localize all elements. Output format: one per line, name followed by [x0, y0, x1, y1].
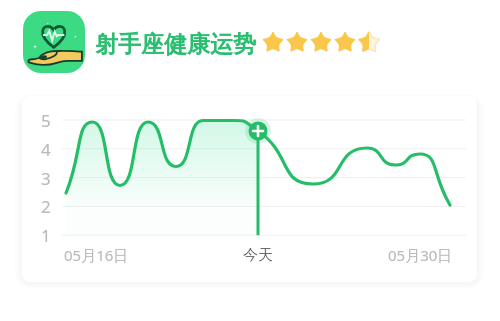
- staticText: 05月16日: [64, 245, 129, 265]
- staticText: 今天: [243, 246, 273, 265]
- staticText: 3: [41, 167, 51, 189]
- staticText: 射手座健康运势: [95, 30, 256, 59]
- staticText: 2: [41, 195, 51, 217]
- button[interactable]: [22, 96, 477, 282]
- button[interactable]: Health fortune app icon: [23, 11, 85, 73]
- staticText: 1: [41, 224, 51, 246]
- staticText: 4: [41, 138, 51, 160]
- staticText: 5: [41, 109, 51, 131]
- staticText: 05月30日: [388, 245, 453, 265]
